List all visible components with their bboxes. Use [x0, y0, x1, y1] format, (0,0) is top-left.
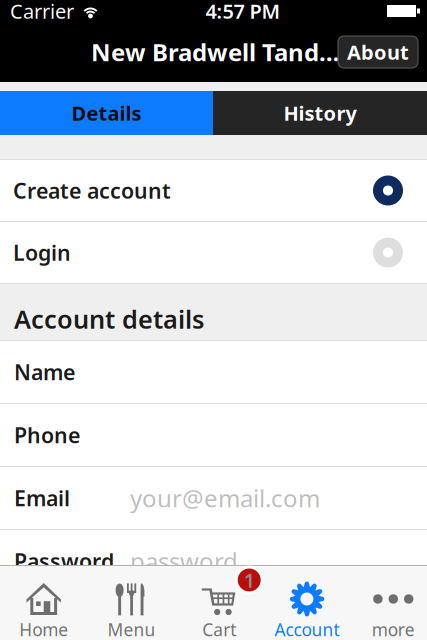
staticText: Create account	[13, 176, 171, 205]
button[interactable]: Email	[0, 467, 427, 529]
button[interactable]: Account	[256, 566, 342, 640]
button[interactable]: 1	[171, 566, 256, 640]
staticText: Phone	[14, 421, 80, 449]
staticText: New Bradwell Tand…	[91, 36, 340, 68]
staticText: Login	[13, 238, 71, 267]
staticText: Cart	[202, 618, 236, 640]
button[interactable]: Name	[0, 341, 427, 403]
staticText: Carrier	[10, 0, 74, 24]
staticText: History	[283, 100, 356, 126]
button[interactable]: more	[342, 566, 427, 640]
button[interactable]: Create account	[0, 160, 427, 221]
staticText: Details	[71, 100, 141, 126]
staticText: Menu	[108, 618, 156, 640]
button[interactable]: History	[213, 91, 427, 135]
staticText: About	[347, 39, 409, 65]
button[interactable]: Login	[0, 222, 427, 283]
button[interactable]: Home	[0, 566, 85, 640]
staticText: 1	[244, 567, 255, 593]
button[interactable]: About	[338, 36, 418, 68]
staticText: Home	[19, 618, 68, 640]
staticText: Email	[14, 484, 70, 512]
staticText: Password	[14, 547, 114, 575]
staticText: more	[372, 618, 415, 640]
staticText: Account details	[14, 302, 204, 336]
staticText: Account	[274, 618, 339, 640]
button[interactable]: Password	[0, 530, 427, 592]
button[interactable]: Details	[0, 91, 213, 135]
button[interactable]: Menu	[85, 566, 171, 640]
staticText: your@email.com	[130, 482, 320, 514]
staticText: 4:57 PM	[205, 0, 280, 24]
staticText: Name	[14, 358, 75, 386]
staticText: password	[130, 545, 238, 577]
button[interactable]: Phone	[0, 404, 427, 466]
